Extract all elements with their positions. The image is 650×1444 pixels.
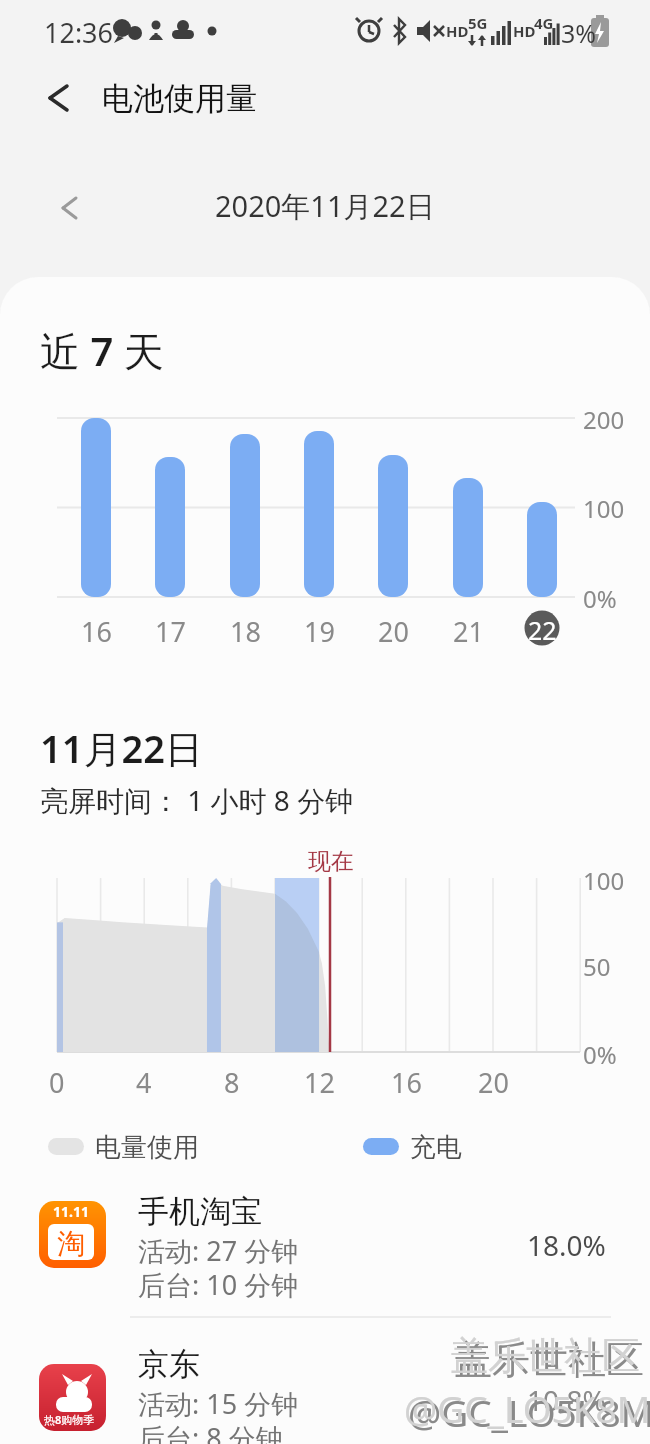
- staticText: 18.0%: [527, 1226, 606, 1264]
- staticText: 京东: [138, 1345, 200, 1384]
- staticText: 21: [453, 613, 484, 650]
- staticText: 50: [583, 950, 611, 983]
- button[interactable]: [30, 70, 90, 126]
- staticText: 18: [230, 613, 261, 650]
- staticText: 热8购物季: [44, 1412, 95, 1427]
- staticText: 4G: [534, 13, 554, 33]
- staticText: 现在: [308, 847, 354, 876]
- button[interactable]: [0, 1185, 650, 1315]
- staticText: 22: [528, 613, 557, 647]
- staticText: HD: [446, 21, 469, 41]
- staticText: 11.11: [53, 1202, 89, 1221]
- staticText: 16: [81, 613, 112, 650]
- staticText: 12: [304, 1064, 335, 1101]
- button[interactable]: [40, 185, 100, 231]
- staticText: 0%: [583, 582, 617, 615]
- staticText: 11月22日: [40, 722, 203, 774]
- staticText: @GC_LO5K8M7: [408, 1387, 650, 1437]
- staticText: 活动: 15 分钟: [138, 1385, 299, 1422]
- staticText: 电池使用量: [102, 79, 257, 118]
- staticText: 19: [304, 613, 335, 650]
- button[interactable]: [0, 1330, 650, 1444]
- staticText: 20: [378, 613, 409, 650]
- staticText: 100: [583, 864, 625, 897]
- staticText: 0: [49, 1064, 65, 1101]
- staticText: 盖乐世社区: [454, 1336, 644, 1384]
- staticText: 后台: 8 分钟: [138, 1419, 283, 1444]
- staticText: 淘: [57, 1226, 85, 1261]
- staticText: 近 7 天: [40, 323, 164, 378]
- staticText: 16: [391, 1064, 422, 1101]
- staticText: HD: [513, 21, 536, 41]
- staticText: 20: [478, 1064, 509, 1101]
- staticText: 8: [224, 1064, 240, 1101]
- staticText: 活动: 27 分钟: [138, 1232, 299, 1269]
- staticText: 12:36: [44, 14, 114, 51]
- staticText: 17: [155, 613, 186, 650]
- staticText: 100: [583, 492, 625, 525]
- staticText: @GC_LO5K8M7: [404, 1383, 650, 1433]
- staticText: 亮屏时间： 1 小时 8 分钟: [40, 781, 354, 819]
- staticText: 2020年11月22日: [215, 186, 435, 226]
- staticText: 充电: [410, 1131, 462, 1164]
- staticText: 电量使用: [95, 1131, 199, 1164]
- staticText: 手机淘宝: [138, 1192, 262, 1231]
- staticText: 200: [583, 403, 625, 436]
- staticText: 5G: [468, 13, 488, 33]
- staticText: 3%: [561, 16, 597, 50]
- staticText: 后台: 10 分钟: [138, 1266, 299, 1303]
- staticText: 10.8%: [527, 1381, 606, 1419]
- staticText: 0%: [583, 1038, 617, 1071]
- staticText: 盖乐世社区: [450, 1332, 640, 1380]
- staticText: 4: [136, 1064, 152, 1101]
